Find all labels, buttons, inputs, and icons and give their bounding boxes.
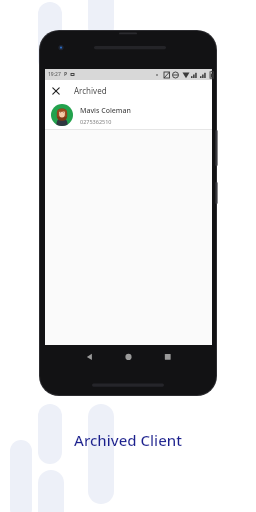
button[interactable]: Close bbox=[45, 80, 66, 101]
staticText: 0275362510 bbox=[80, 118, 112, 125]
staticText: Mavis Coleman bbox=[80, 106, 131, 116]
staticText: 19:27 bbox=[48, 71, 61, 78]
staticText: P bbox=[64, 71, 68, 78]
button[interactable]: Mavis Coleman bbox=[45, 101, 212, 129]
staticText: Archived bbox=[74, 85, 107, 96]
staticText: Archived Client bbox=[74, 430, 182, 450]
